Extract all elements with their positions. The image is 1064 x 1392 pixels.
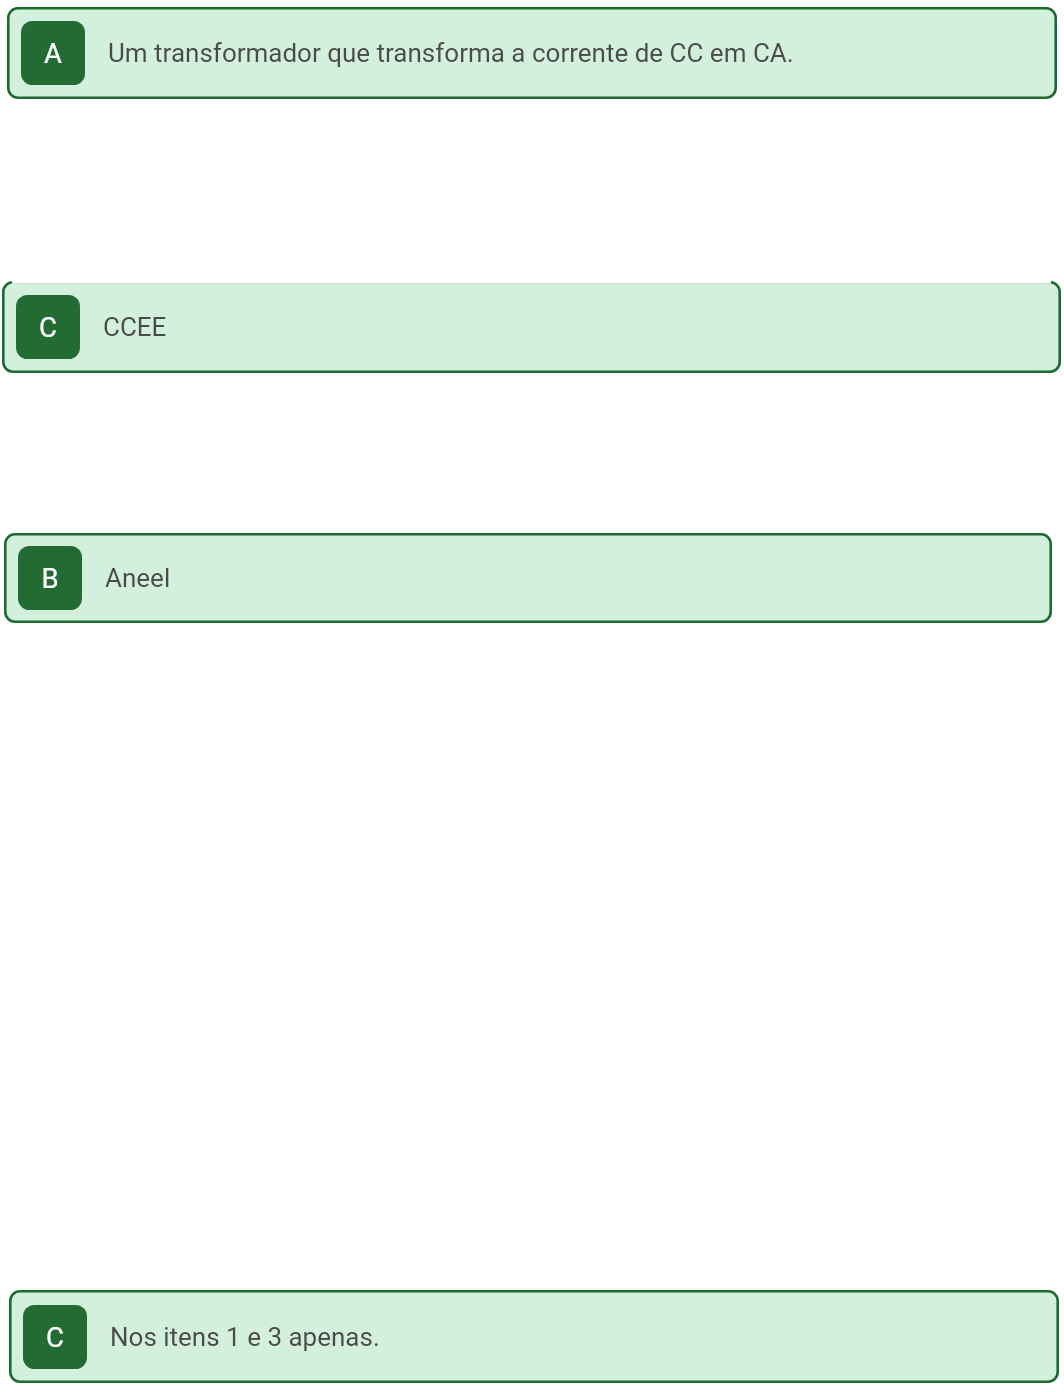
button[interactable]: Alternativa C: Nos itens 1 e 3 apenas. bbox=[9, 1290, 1059, 1383]
staticText: Aneel bbox=[105, 563, 171, 593]
button[interactable]: Alternativa B: Aneel bbox=[4, 533, 1052, 623]
staticText: Um transformador que transforma a corren… bbox=[108, 38, 794, 68]
staticText: C bbox=[39, 311, 57, 343]
button[interactable]: Alternativa C: CCEE bbox=[2, 281, 1061, 373]
staticText: A bbox=[44, 37, 62, 69]
button[interactable]: Alternativa A: Um transformador que tran… bbox=[7, 7, 1057, 99]
staticText: Nos itens 1 e 3 apenas. bbox=[110, 1322, 380, 1352]
staticText: C bbox=[46, 1321, 64, 1353]
staticText: B bbox=[41, 562, 59, 594]
staticText: CCEE bbox=[103, 312, 167, 342]
